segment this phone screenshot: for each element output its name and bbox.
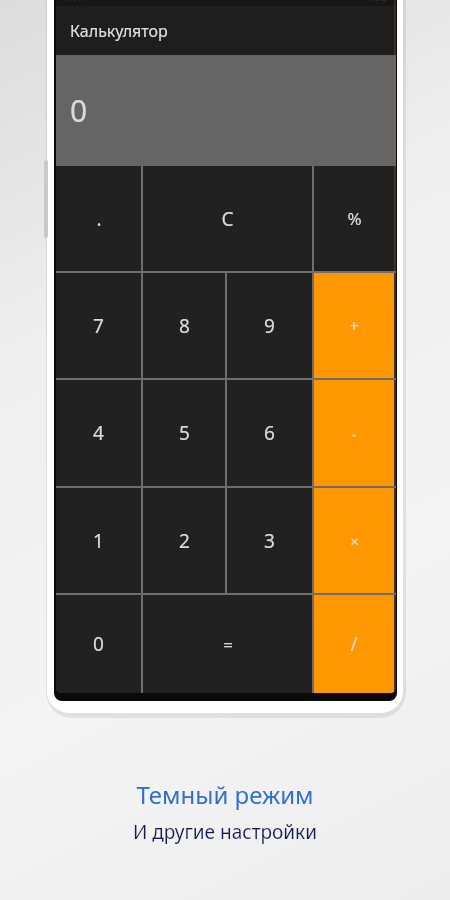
button[interactable]: × (314, 488, 394, 593)
button[interactable]: 6 (227, 380, 312, 486)
staticText: 0 (70, 90, 88, 131)
button[interactable]: 0 (56, 595, 141, 693)
staticText: Калькулятор (70, 20, 168, 42)
button[interactable]: . (56, 166, 141, 271)
staticText: + (349, 314, 359, 337)
staticText: 0 (93, 631, 104, 657)
staticText: 14:12 (366, 0, 387, 3)
staticText: / (350, 631, 358, 657)
staticText: 7 (93, 313, 104, 339)
button[interactable]: 8 (143, 273, 225, 378)
button[interactable]: 3 (227, 488, 312, 593)
staticText: C (221, 206, 234, 232)
button[interactable]: 7 (56, 273, 141, 378)
staticText: × (350, 531, 359, 551)
button[interactable]: % (314, 166, 394, 271)
button[interactable]: 9 (227, 273, 312, 378)
staticText: . (96, 206, 102, 232)
staticText: = (223, 633, 233, 656)
staticText: - (351, 422, 357, 445)
staticText: 2 (179, 528, 190, 554)
staticText: % (347, 207, 362, 230)
button[interactable]: = (143, 595, 312, 693)
staticText: 1 (93, 528, 104, 554)
button[interactable]: + (314, 273, 394, 378)
staticText: 4 (93, 420, 104, 446)
button[interactable]: 2 (143, 488, 225, 593)
button[interactable]: 4 (56, 380, 141, 486)
staticText: 9 (264, 313, 275, 339)
staticText: 6 (264, 420, 275, 446)
button[interactable]: - (314, 380, 394, 486)
staticText: Темный режим (136, 778, 314, 811)
staticText: И другие настройки (133, 819, 317, 845)
staticText: ААА (65, 0, 81, 3)
button[interactable]: 1 (56, 488, 141, 593)
staticText: 3 (264, 528, 275, 554)
button[interactable]: C (143, 166, 312, 271)
button[interactable]: 5 (143, 380, 225, 486)
button[interactable]: / (314, 595, 394, 693)
staticText: 5 (179, 420, 190, 446)
staticText: 8 (179, 313, 190, 339)
